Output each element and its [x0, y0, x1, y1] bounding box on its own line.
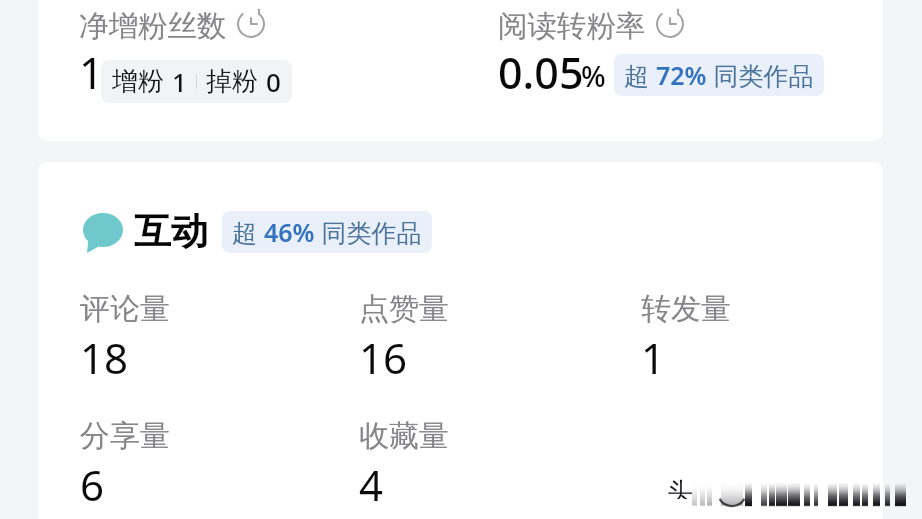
- staticText: 净增粉丝数: [79, 8, 227, 45]
- button[interactable]: 点赞量: [359, 290, 449, 386]
- staticText: 4: [359, 456, 384, 513]
- staticText: 互动: [134, 208, 208, 255]
- button[interactable]: 超: [614, 54, 824, 96]
- button[interactable]: 增粉: [101, 60, 292, 103]
- staticText: 0.05: [498, 43, 584, 102]
- staticText: 同类作品: [315, 215, 422, 249]
- staticText: 72%: [656, 58, 707, 92]
- staticText: 转发量: [641, 290, 731, 328]
- staticText: 18: [80, 329, 129, 386]
- staticText: 16: [359, 329, 408, 386]
- button[interactable]: 互动: [80, 208, 432, 255]
- button[interactable]: 超: [222, 211, 432, 253]
- button[interactable]: 收藏量: [359, 417, 449, 513]
- staticText: 分享量: [80, 417, 170, 455]
- button[interactable]: 分享量: [80, 417, 170, 513]
- staticText: 1: [641, 329, 666, 386]
- staticText: 6: [80, 456, 105, 513]
- button[interactable]: 转发量: [641, 290, 731, 386]
- staticText: %: [581, 56, 606, 95]
- staticText: 阅读转粉率: [498, 8, 646, 45]
- button[interactable]: 评论量: [80, 290, 170, 386]
- staticText: 收藏量: [359, 417, 449, 455]
- staticText: 掉粉: [206, 65, 258, 98]
- staticText: 头: [667, 476, 693, 499]
- staticText: 1: [79, 43, 104, 102]
- staticText: 超: [232, 215, 264, 249]
- staticText: 点赞量: [359, 290, 449, 328]
- staticText: 1: [172, 64, 187, 99]
- staticText: 0: [266, 64, 281, 99]
- staticText: 评论量: [80, 290, 170, 328]
- staticText: 增粉: [112, 65, 164, 98]
- staticText: 同类作品: [707, 58, 814, 92]
- staticText: 超: [624, 58, 656, 92]
- staticText: 46%: [264, 215, 315, 249]
